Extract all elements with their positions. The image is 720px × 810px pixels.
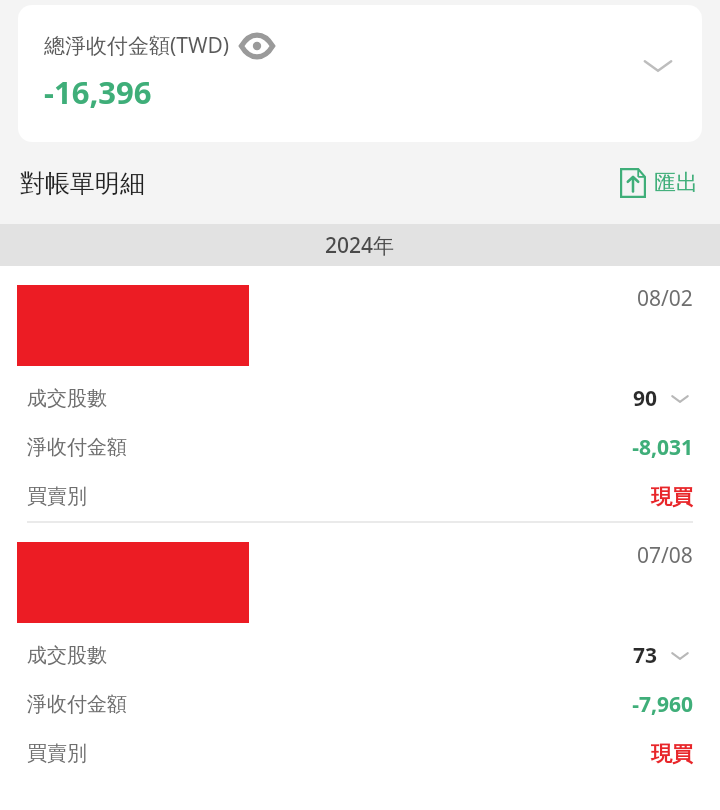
staticText: 淨收付金額	[27, 435, 127, 460]
staticText: -16,396	[44, 71, 152, 113]
staticText: 匯出	[654, 169, 698, 197]
staticText: 90	[632, 384, 657, 413]
staticText: 現買	[651, 741, 693, 767]
button[interactable]: 買賣別	[0, 729, 720, 778]
staticText: 淨收付金額	[27, 692, 127, 717]
staticText: 買賣別	[27, 741, 87, 766]
button[interactable]: 淨收付金額	[0, 423, 720, 472]
staticText: -8,031	[632, 433, 693, 462]
staticText: 07/08	[637, 541, 693, 570]
button[interactable]: 成交股數	[0, 631, 720, 680]
staticText: 買賣別	[27, 484, 87, 509]
button[interactable]: 買賣別	[0, 472, 720, 521]
staticText: 現買	[651, 484, 693, 510]
button[interactable]: Toggle amount visibility	[240, 34, 274, 58]
button[interactable]: 總淨收付金額(TWD)	[18, 5, 702, 142]
staticText: 73	[632, 641, 657, 670]
staticText: 08/02	[637, 284, 693, 313]
staticText: 對帳單明細	[20, 168, 145, 199]
staticText: 成交股數	[27, 386, 107, 411]
button[interactable]: Expand summary	[636, 51, 680, 81]
staticText: 成交股數	[27, 643, 107, 668]
staticText: -7,960	[632, 690, 693, 719]
button[interactable]: 成交股數	[0, 374, 720, 423]
staticText: 總淨收付金額(TWD)	[44, 31, 230, 60]
button[interactable]: 淨收付金額	[0, 680, 720, 729]
staticText: 2024年	[325, 231, 395, 260]
button[interactable]: 匯出	[620, 168, 698, 198]
